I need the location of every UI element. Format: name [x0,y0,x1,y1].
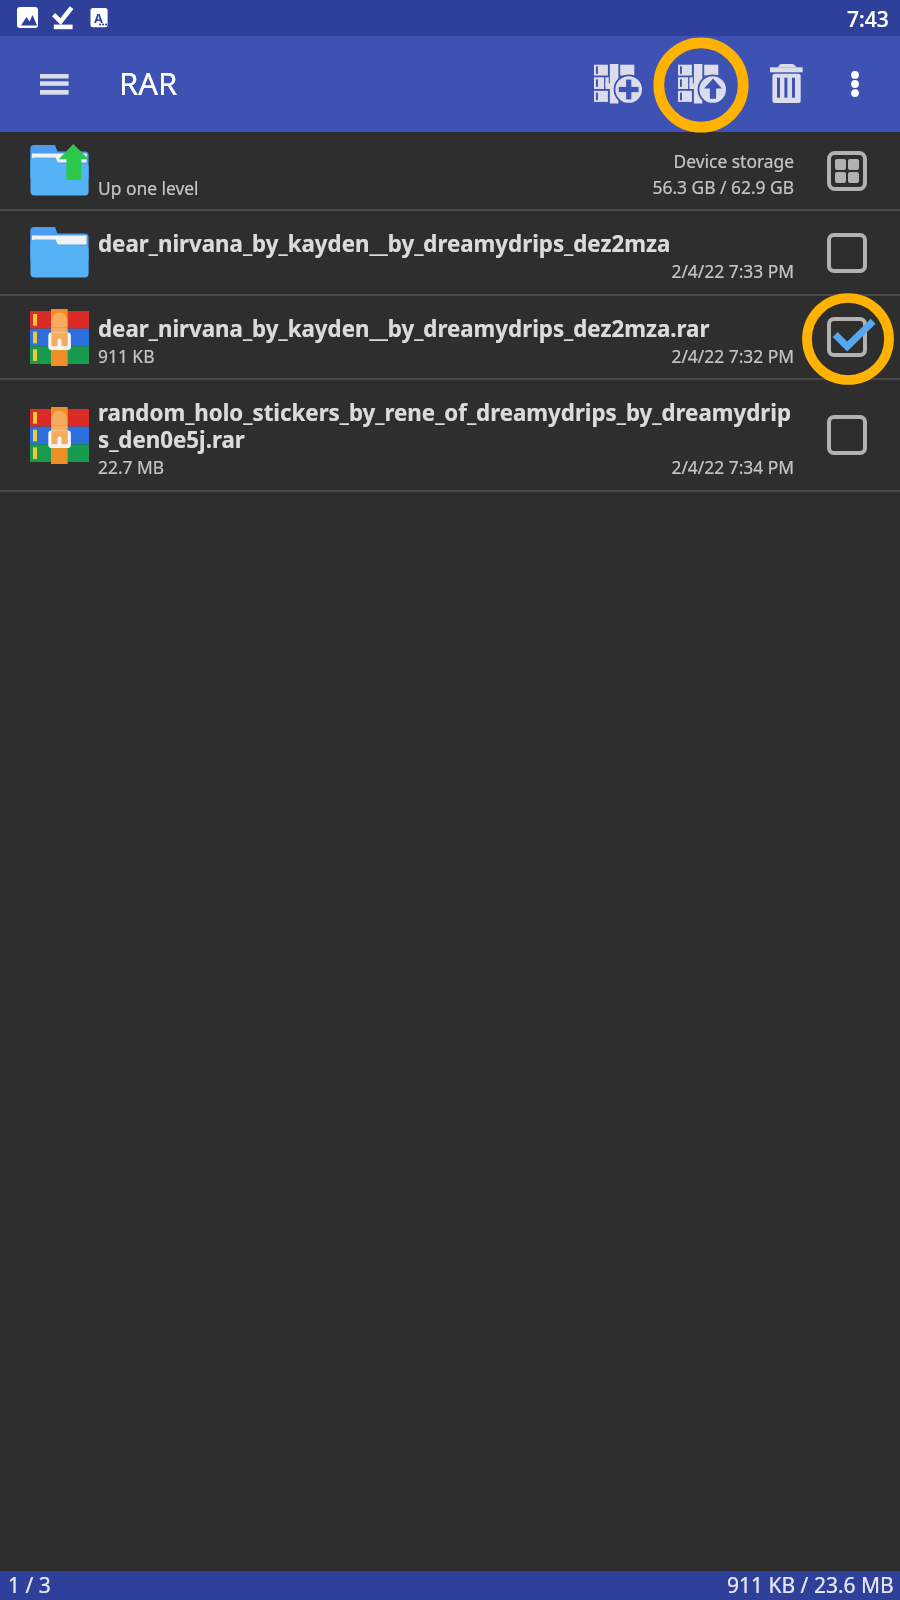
button[interactable]: Change view mode [812,136,882,206]
staticText: 2/4/22 7:32 PM [0,344,794,368]
button[interactable]: Select item [812,218,882,288]
button[interactable]: Extract archive [654,40,750,128]
staticText: 911 KB [98,344,155,368]
staticText: 7:43 [847,5,889,34]
button[interactable]: Select item [812,302,882,372]
staticText: Device storage [0,149,794,173]
staticText: Up one level [98,176,199,200]
staticText: dear_nirvana_by_kayden__by_dreamydrips_d… [98,313,792,343]
button[interactable]: More options [822,40,888,128]
button[interactable]: Delete [752,40,820,128]
staticText: 911 KB / 23.6 MB [727,1571,894,1600]
staticText: 56.3 GB / 62.9 GB [0,175,794,199]
staticText: 1 / 3 [8,1571,51,1600]
button[interactable]: dear_nirvana_by_kayden__by_dreamydrips_d… [0,211,900,294]
staticText: 22.7 MB [98,455,165,479]
button[interactable]: dear_nirvana_by_kayden__by_dreamydrips_d… [0,296,900,378]
button[interactable]: Add to archive [570,40,666,128]
button[interactable]: Select item [812,400,882,470]
staticText: random_holo_stickers_by_rene_of_dreamydr… [98,397,792,455]
button[interactable]: random_holo_stickers_by_rene_of_dreamydr… [0,380,900,490]
staticText: 2/4/22 7:33 PM [0,259,794,283]
staticText: A [94,9,103,27]
button[interactable]: Up one level [0,132,900,209]
staticText: RAR [119,62,178,104]
staticText: 2/4/22 7:34 PM [0,455,794,479]
button[interactable]: Navigation menu [26,56,82,112]
staticText: dear_nirvana_by_kayden__by_dreamydrips_d… [98,228,792,258]
